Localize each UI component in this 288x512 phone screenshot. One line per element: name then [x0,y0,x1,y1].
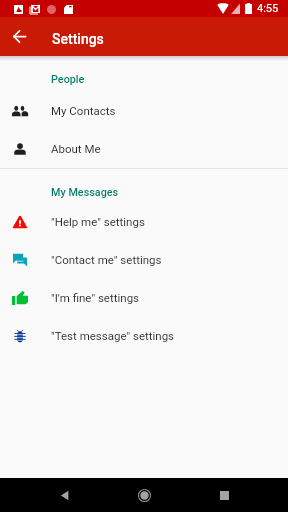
staticText: "Help me" settings [51,215,145,228]
button[interactable]: Home [127,478,161,512]
staticText: "I'm fine" settings [51,291,140,304]
button[interactable]: "Help me" settings [0,203,288,241]
button[interactable]: "I'm fine" settings [0,279,288,317]
staticText: My Messages [51,186,119,199]
staticText: My Contacts [51,104,116,117]
button[interactable]: My Contacts [0,92,288,130]
button[interactable]: "Contact me" settings [0,241,288,279]
staticText: "Test message" settings [51,329,175,342]
staticText: Settings [52,31,104,47]
staticText: 4:55 [257,2,279,15]
button[interactable]: Recent apps [207,478,241,512]
button[interactable]: Back [47,478,81,512]
button[interactable]: Navigate up [3,20,36,53]
button[interactable]: "Test message" settings [0,317,288,355]
staticText: "Contact me" settings [51,253,162,266]
staticText: People [51,73,85,86]
button[interactable]: About Me [0,130,288,168]
staticText: About Me [51,142,101,155]
